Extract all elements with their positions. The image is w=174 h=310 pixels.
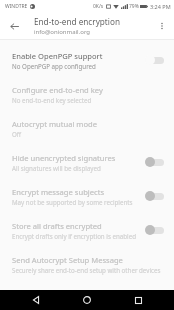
button[interactable]: Toggle xyxy=(144,53,166,67)
button[interactable]: Encrypt message subjects xyxy=(0,179,174,213)
staticText: Hide unencrypted signatures xyxy=(12,153,116,163)
button[interactable]: Navigate up xyxy=(3,15,25,37)
staticText: Send Autocrypt Setup Message xyxy=(12,255,123,265)
button[interactable]: Store all drafts encrypted xyxy=(0,213,174,247)
button[interactable]: Recents xyxy=(123,290,153,310)
staticText: Securely share end-to-end setup with oth… xyxy=(12,266,161,274)
button[interactable]: Toggle xyxy=(144,155,166,169)
staticText: No end-to-end key selected xyxy=(12,96,92,104)
staticText: All signatures will be displayed xyxy=(12,164,101,172)
button[interactable]: Back xyxy=(21,290,51,310)
staticText: 3:24 PM xyxy=(150,3,171,10)
button[interactable]: Hide unencrypted signatures xyxy=(0,145,174,179)
staticText: 79% xyxy=(129,3,139,10)
staticText: Store all drafts encrypted xyxy=(12,221,102,231)
staticText: Encrypt drafts only if encryption is ena… xyxy=(12,232,136,240)
button[interactable]: Home xyxy=(72,290,102,310)
staticText: Enable OpenPGP support xyxy=(12,51,103,61)
staticText: Configure end-to-end key xyxy=(12,85,103,95)
staticText: info@onionmail.org xyxy=(34,28,90,36)
staticText: No OpenPGP app configured xyxy=(12,62,96,70)
staticText: Autocrypt mutual mode xyxy=(12,119,97,129)
staticText: May not be supported by some recipients xyxy=(12,198,133,206)
staticText: 0K/s xyxy=(93,3,104,10)
staticText: End-to-end encryption xyxy=(34,16,120,27)
button[interactable]: Toggle xyxy=(144,189,166,203)
button[interactable]: Toggle xyxy=(144,223,166,237)
staticText: WINDTRE xyxy=(5,3,28,10)
staticText: Encrypt message subjects xyxy=(12,187,105,197)
staticText: Off xyxy=(12,130,22,138)
button[interactable]: Enable OpenPGP support xyxy=(0,43,174,77)
button[interactable]: Configure end-to-end key xyxy=(0,77,174,111)
button[interactable]: Send Autocrypt Setup Message xyxy=(0,247,174,281)
button[interactable]: More options xyxy=(152,16,172,36)
button[interactable]: Autocrypt mutual mode xyxy=(0,111,174,145)
